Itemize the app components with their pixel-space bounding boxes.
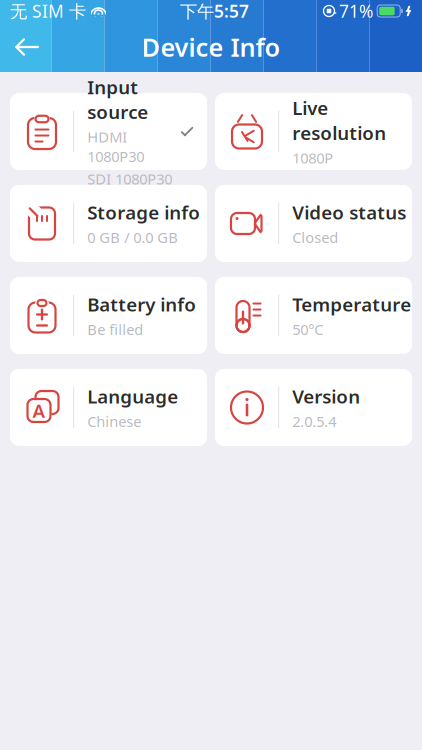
staticText: 无 SIM 卡 xyxy=(10,0,86,22)
staticText: Version xyxy=(292,384,360,409)
staticText: 2.0.5.4 xyxy=(292,412,336,431)
staticText: 50°C xyxy=(292,320,323,339)
button[interactable]: Battery info xyxy=(10,277,207,354)
staticText: 下午5:57 xyxy=(180,0,249,22)
staticText: Live resolution xyxy=(292,95,386,145)
button[interactable]: Temperature xyxy=(215,277,412,354)
staticText: Video status xyxy=(292,200,406,225)
staticText: A xyxy=(32,398,45,423)
button[interactable]: Input source xyxy=(10,93,207,170)
staticText: Storage info xyxy=(87,200,200,225)
staticText: Be filled xyxy=(87,320,143,339)
staticText: Language xyxy=(87,384,178,409)
staticText: Battery info xyxy=(87,292,196,317)
staticText: Device Info xyxy=(141,30,280,64)
staticText: Chinese xyxy=(87,412,141,431)
staticText: Input source xyxy=(87,74,148,124)
staticText: Closed xyxy=(292,228,338,247)
button[interactable]: Live resolution xyxy=(215,93,412,170)
staticText: SDI 1080P30 xyxy=(87,169,172,188)
button[interactable]: Version xyxy=(215,369,412,446)
staticText: 71% xyxy=(339,0,373,22)
button[interactable]: A xyxy=(10,369,207,446)
staticText: 1080P xyxy=(292,148,333,168)
button[interactable]: Back xyxy=(0,22,54,72)
button[interactable]: Storage info xyxy=(10,185,207,262)
button[interactable]: Video status xyxy=(215,185,412,262)
staticText: HDMI 1080P30 xyxy=(87,127,144,166)
staticText: 0 GB / 0.0 GB xyxy=(87,228,178,247)
staticText: Temperature xyxy=(292,292,411,317)
